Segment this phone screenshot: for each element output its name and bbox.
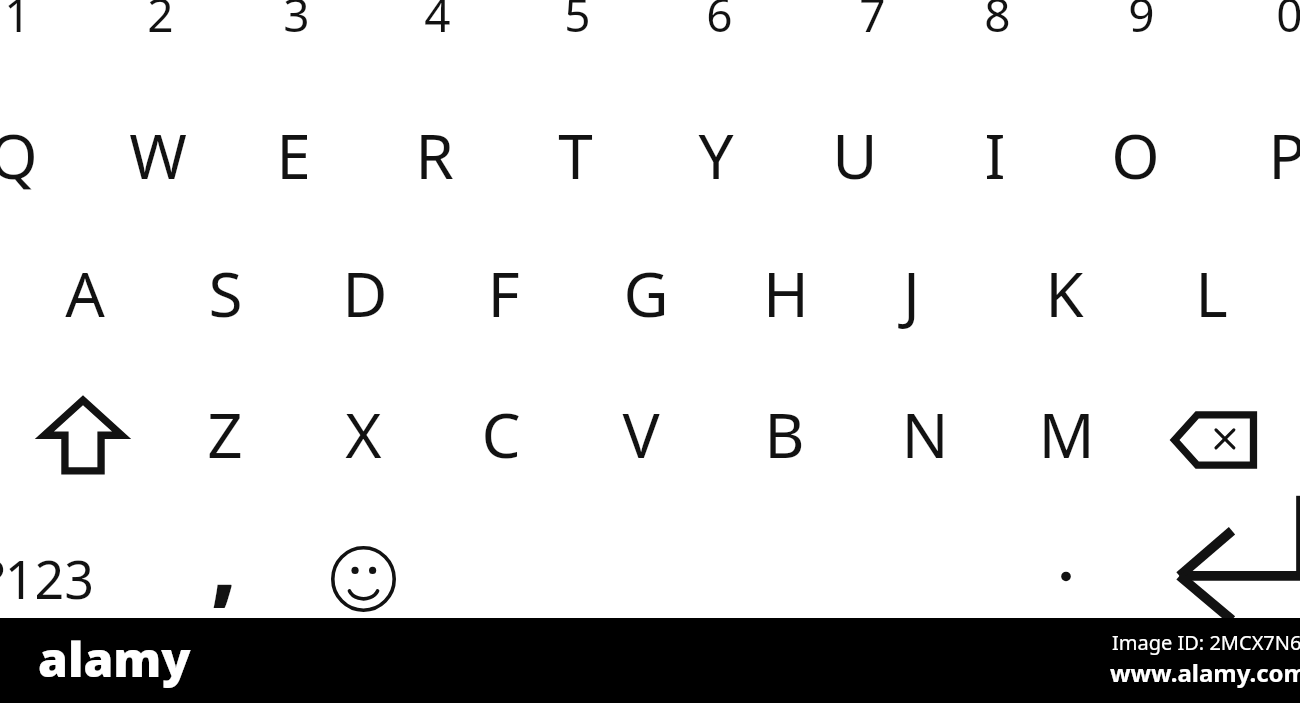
staticText: R	[415, 113, 454, 197]
button[interactable]: W	[93, 100, 223, 210]
button[interactable]: 2	[95, 0, 225, 60]
button[interactable]: J	[846, 238, 976, 348]
button[interactable]: E	[228, 100, 358, 210]
staticText: D	[342, 251, 388, 335]
staticText: 6	[706, 0, 733, 46]
button[interactable]: X	[298, 379, 428, 489]
button[interactable]: A	[20, 238, 150, 348]
button[interactable]: 8	[932, 0, 1062, 60]
staticText: W	[129, 113, 187, 197]
button[interactable]: Period	[1050, 558, 1082, 600]
staticText: 9	[1128, 0, 1155, 46]
button[interactable]: 3	[231, 0, 361, 60]
button[interactable]: L	[1146, 238, 1276, 348]
staticText: F	[487, 251, 520, 335]
button[interactable]: C	[436, 379, 566, 489]
button[interactable]: P	[1222, 100, 1300, 210]
staticText: Z	[207, 392, 243, 476]
button[interactable]: Q	[0, 100, 78, 210]
staticText: Q	[0, 113, 38, 197]
button[interactable]: F	[438, 238, 568, 348]
staticText: I	[984, 113, 1006, 197]
button[interactable]: 9	[1076, 0, 1206, 60]
button[interactable]: 7	[807, 0, 937, 60]
button[interactable]: Enter	[1172, 528, 1300, 620]
button[interactable]: ,	[169, 509, 279, 619]
button[interactable]: B	[719, 379, 849, 489]
button[interactable]: N	[860, 379, 990, 489]
button[interactable]: G	[581, 238, 711, 348]
staticText: U	[832, 113, 878, 197]
button[interactable]: D	[300, 238, 430, 348]
button[interactable]: U	[790, 100, 920, 210]
button[interactable]: Y	[651, 100, 781, 210]
staticText: 2	[147, 0, 174, 46]
staticText: 5	[564, 0, 591, 46]
staticText: A	[65, 251, 105, 335]
staticText: ,	[211, 509, 237, 619]
button[interactable]: M	[1001, 379, 1131, 489]
button[interactable]: O	[1070, 100, 1200, 210]
button[interactable]: 1	[0, 0, 82, 60]
staticText: L	[1195, 251, 1228, 335]
staticText: 0	[1276, 0, 1300, 46]
button[interactable]: H	[721, 238, 851, 348]
staticText: 7	[859, 0, 886, 46]
button[interactable]: 0	[1224, 0, 1300, 60]
button[interactable]: 5	[512, 0, 642, 60]
staticText: alamy	[38, 626, 191, 691]
button[interactable]: I	[930, 100, 1060, 210]
button[interactable]: ?123	[0, 528, 118, 628]
staticText: 3	[283, 0, 310, 46]
staticText: 4	[424, 0, 451, 46]
button[interactable]: 6	[654, 0, 784, 60]
staticText: Image ID: 2MCX7N6	[1112, 629, 1300, 656]
staticText: N	[901, 392, 949, 476]
button[interactable]: R	[369, 100, 499, 210]
button[interactable]: K	[999, 238, 1129, 348]
button[interactable]: Backspace	[1172, 412, 1256, 468]
staticText: V	[622, 392, 660, 476]
button[interactable]: 4	[372, 0, 502, 60]
staticText: K	[1045, 251, 1084, 335]
button[interactable]: Emoji	[331, 546, 396, 612]
staticText: M	[1038, 392, 1095, 476]
staticText: J	[903, 251, 920, 335]
button[interactable]: T	[510, 100, 640, 210]
staticText: E	[276, 113, 311, 197]
button[interactable]: S	[160, 238, 290, 348]
staticText: G	[623, 251, 669, 335]
staticText: O	[1111, 113, 1160, 197]
staticText: S	[208, 251, 243, 335]
button[interactable]: V	[576, 379, 706, 489]
staticText: www.alamy.com	[1110, 656, 1300, 689]
staticText: 1	[4, 0, 31, 46]
staticText: 8	[984, 0, 1011, 46]
button[interactable]: Shift	[40, 398, 126, 474]
staticText: H	[763, 251, 809, 335]
staticText: P	[1268, 113, 1300, 197]
staticText: B	[764, 392, 805, 476]
staticText: T	[558, 113, 593, 197]
staticText: ?123	[0, 543, 94, 614]
button[interactable]: Z	[160, 379, 290, 489]
staticText: C	[481, 392, 521, 476]
staticText: Y	[698, 113, 734, 197]
staticText: X	[345, 392, 382, 476]
